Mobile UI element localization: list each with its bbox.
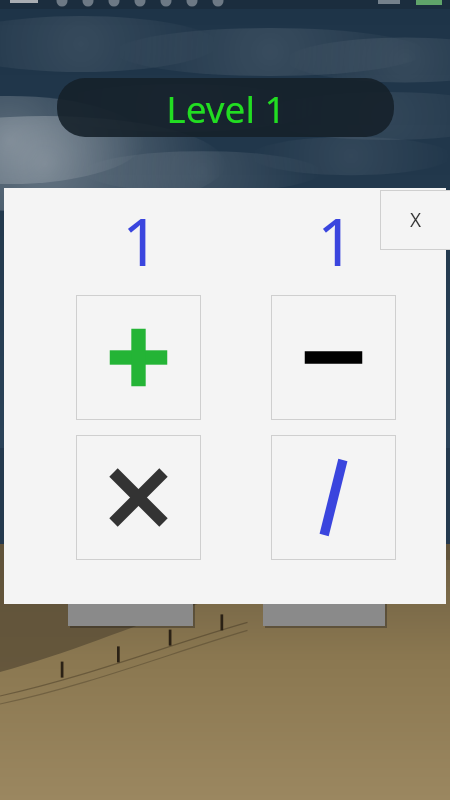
staticText: 1 xyxy=(122,195,160,285)
staticText: X xyxy=(410,207,422,233)
button[interactable]: Plus xyxy=(76,295,201,420)
button[interactable]: Level 1 xyxy=(57,78,394,137)
button[interactable]: Minus xyxy=(271,295,396,420)
staticText: Level 1 xyxy=(166,83,286,133)
button[interactable]: Divide xyxy=(271,435,396,560)
button[interactable]: Close xyxy=(380,190,450,250)
button[interactable]: Multiply xyxy=(76,435,201,560)
staticText: 1 xyxy=(317,195,355,285)
